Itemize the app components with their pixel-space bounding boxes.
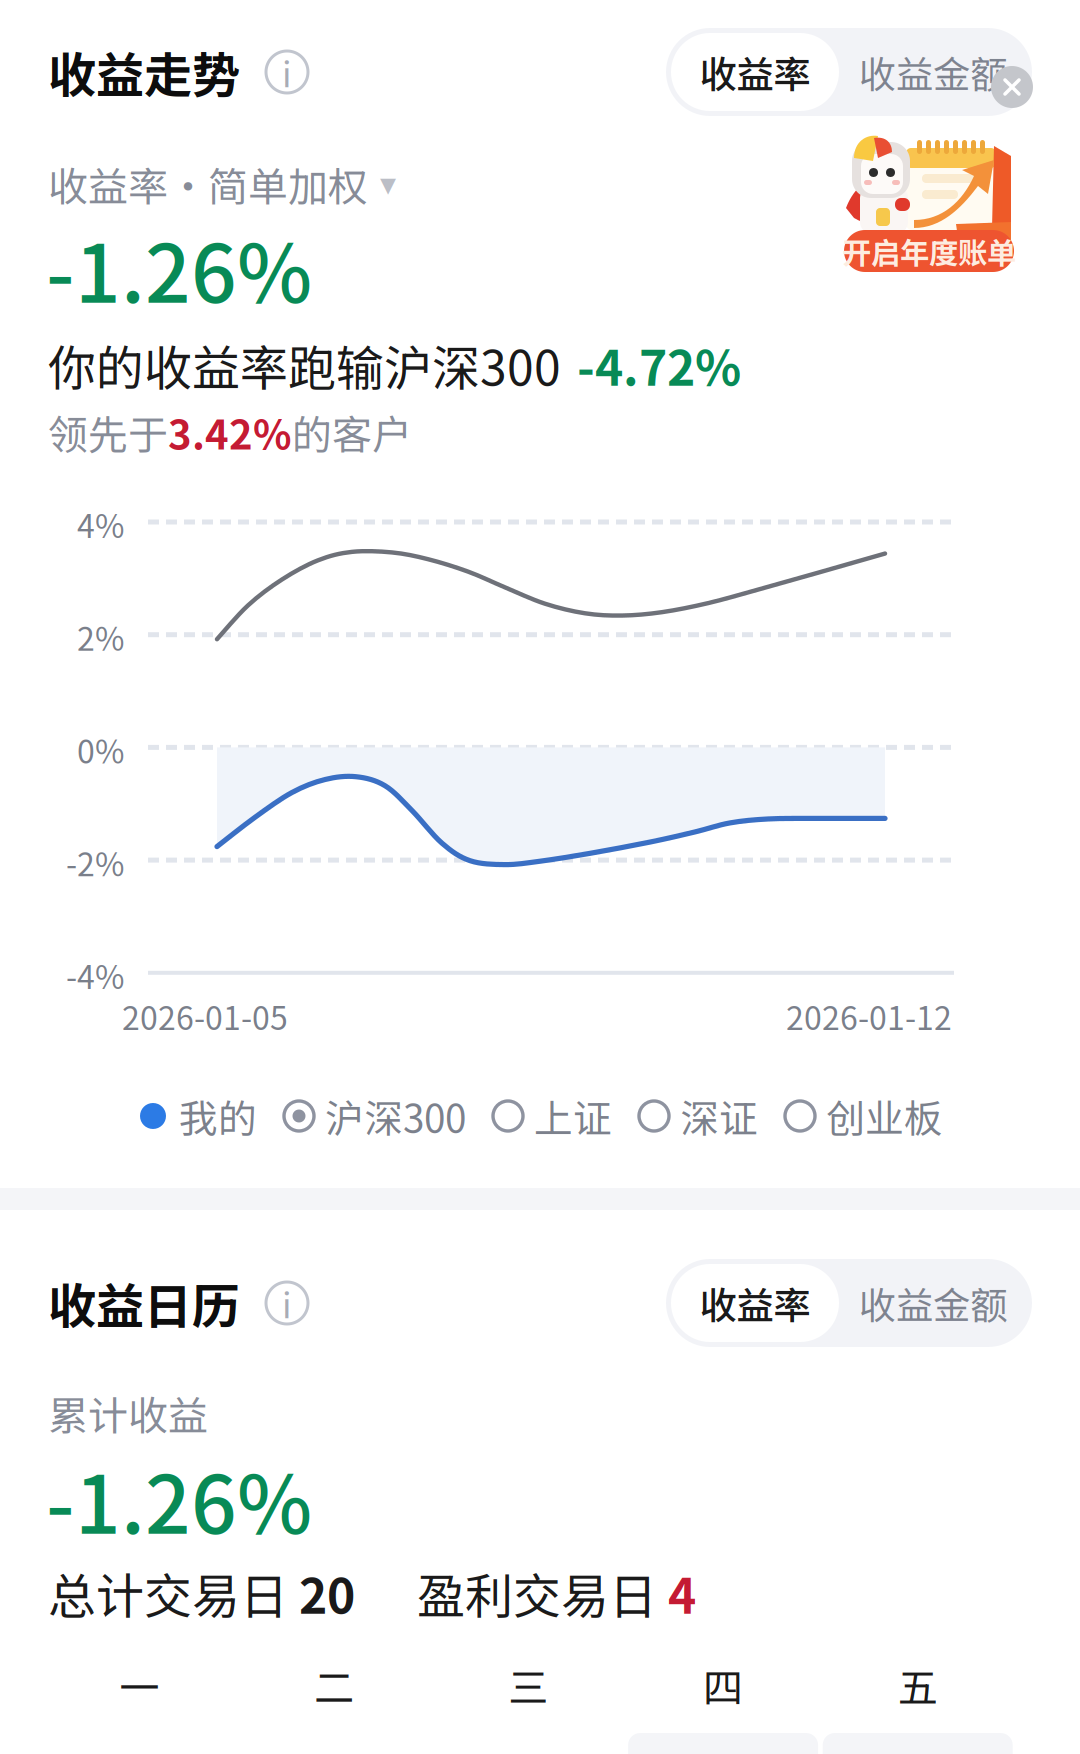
button[interactable]: 收益率·简单加权 (48, 155, 396, 213)
staticText: 创业板 (826, 1088, 943, 1144)
staticText: 领先于 (48, 403, 168, 461)
staticText: -1.26% (46, 210, 312, 326)
staticText: 的客户 (292, 403, 412, 461)
staticText: 三 (508, 1656, 548, 1714)
staticText: 收益走势 (48, 37, 240, 107)
button[interactable]: 二 (237, 1661, 431, 1709)
staticText: 4 (668, 1558, 696, 1627)
button[interactable]: 开启年度账单 (838, 124, 1022, 280)
staticText: 2026-01-12 (786, 993, 952, 1039)
staticText: 4% (77, 501, 124, 547)
staticText: 盈利交易日 (417, 1558, 668, 1627)
staticText: 我的 (179, 1088, 257, 1144)
button[interactable]: 深证 (638, 1088, 758, 1144)
staticText: 四 (703, 1656, 743, 1714)
staticText: 五 (898, 1656, 938, 1714)
button[interactable]: 关闭 (991, 66, 1033, 108)
button[interactable]: 沪深300 (283, 1088, 466, 1144)
staticText: 收益金额 (859, 45, 1007, 99)
staticText: 累计收益 (48, 1384, 208, 1442)
button[interactable]: 收益走势 (48, 37, 308, 107)
staticText: 上证 (534, 1088, 612, 1144)
staticText: -2% (66, 839, 124, 885)
staticText: 一 (119, 1656, 159, 1714)
button[interactable]: 创业板 (784, 1088, 943, 1144)
staticText: 收益日历 (48, 1268, 240, 1338)
button[interactable]: 收益金额 (839, 33, 1027, 111)
staticText: -1.26% (46, 1441, 312, 1557)
staticText: 二 (314, 1656, 354, 1714)
button[interactable]: 四 (626, 1661, 820, 1709)
staticText: i (282, 47, 292, 97)
button[interactable]: 五 (820, 1661, 1015, 1709)
staticText: 20 (299, 1558, 355, 1627)
staticText: 沪深300 (325, 1088, 466, 1144)
button[interactable]: 上证 (492, 1088, 612, 1144)
button[interactable]: 我的 (137, 1088, 257, 1144)
staticText: 深证 (680, 1088, 758, 1144)
button[interactable]: 收益金额 (839, 1264, 1027, 1342)
staticText: 收益率 (699, 1276, 810, 1330)
staticText: 开启年度账单 (842, 230, 1016, 272)
staticText: -4.72% (577, 330, 741, 399)
button[interactable]: 三 (431, 1661, 626, 1709)
staticText: 0% (77, 726, 124, 773)
staticText: 收益金额 (859, 1276, 1007, 1330)
staticText: 收益率 (699, 45, 810, 99)
staticText: 你的收益率跑输沪深300 (48, 330, 561, 399)
button[interactable]: 收益日历 (48, 1268, 308, 1338)
staticText: 2026-01-05 (122, 993, 288, 1039)
button[interactable]: 收益率 (671, 1264, 839, 1342)
staticText: 收益率·简单加权 (48, 155, 368, 213)
staticText: 2% (77, 614, 124, 660)
staticText: i (282, 1278, 292, 1328)
staticText: -4% (66, 952, 124, 998)
staticText: 总计交易日 (48, 1558, 299, 1627)
button[interactable]: 收益率 (671, 33, 839, 111)
staticText: ▾ (380, 165, 396, 202)
button[interactable]: 一 (42, 1661, 237, 1709)
staticText: 3.42% (168, 403, 292, 461)
